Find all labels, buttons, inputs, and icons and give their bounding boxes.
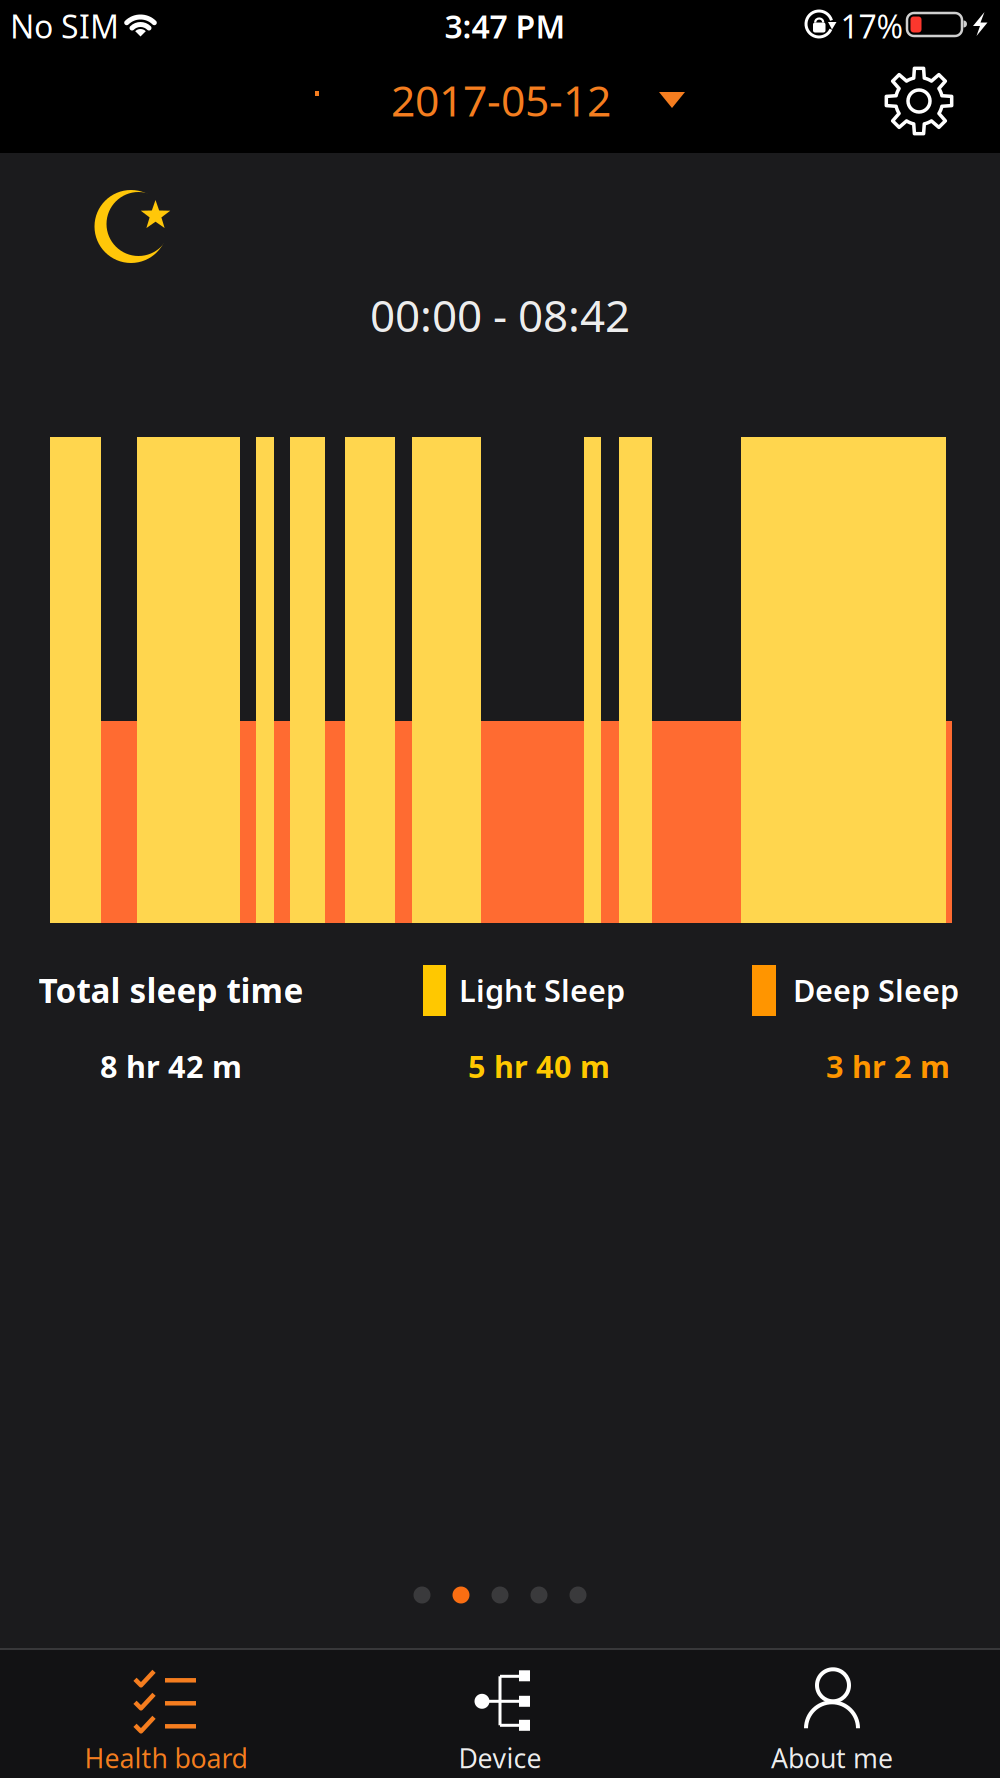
staticText: 2017-05-12: [391, 72, 611, 128]
staticText: 3:47 PM: [444, 5, 565, 47]
staticText: No SIM: [10, 5, 119, 47]
button[interactable]: Device: [458, 1668, 541, 1776]
button[interactable]: 2017-05-12: [391, 72, 685, 128]
staticText: 5 hr 40 m: [468, 1046, 610, 1086]
staticText: 17%: [840, 5, 903, 47]
staticText: 8 hr 42 m: [100, 1046, 242, 1086]
button[interactable]: About me: [771, 1668, 893, 1776]
staticText: Deep Sleep: [793, 970, 959, 1010]
staticText: Device: [458, 1740, 541, 1776]
staticText: Health board: [84, 1740, 247, 1776]
button[interactable]: Health board: [84, 1668, 247, 1776]
staticText: Total sleep time: [38, 968, 303, 1012]
staticText: 3 hr 2 m: [826, 1046, 950, 1086]
staticText: About me: [771, 1740, 893, 1776]
staticText: Light Sleep: [459, 970, 625, 1010]
button[interactable]: Settings: [881, 63, 957, 139]
staticText: 00:00 - 08:42: [370, 286, 630, 344]
